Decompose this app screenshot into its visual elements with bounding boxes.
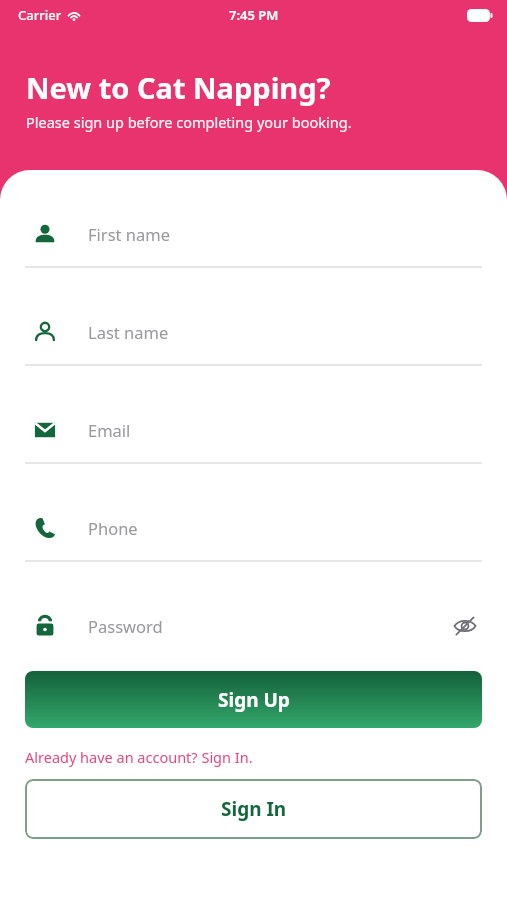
button[interactable]: Phone (0, 495, 507, 593)
staticText: Phone (88, 517, 138, 539)
staticText: New to Cat Napping? (26, 68, 331, 107)
staticText: Please sign up before completing your bo… (26, 112, 352, 132)
staticText: Email (88, 419, 131, 441)
staticText: Password (88, 615, 448, 637)
staticText: First name (88, 223, 170, 245)
staticText: 7:45 PM (229, 6, 279, 24)
button[interactable]: Show password (448, 609, 482, 643)
button[interactable]: Sign In (25, 779, 482, 839)
staticText: Last name (88, 321, 169, 343)
button[interactable]: Last name (0, 299, 507, 397)
staticText: Sign Up (218, 687, 290, 713)
button[interactable]: Already have an account? Sign In. (25, 747, 253, 767)
button[interactable]: Email (0, 397, 507, 495)
button[interactable]: Sign Up (25, 671, 482, 728)
staticText: Already have an account? Sign In. (25, 747, 253, 767)
button[interactable]: First name (0, 201, 507, 299)
staticText: Carrier (18, 6, 62, 24)
button[interactable]: Password (0, 593, 507, 658)
staticText: Sign In (221, 796, 287, 822)
